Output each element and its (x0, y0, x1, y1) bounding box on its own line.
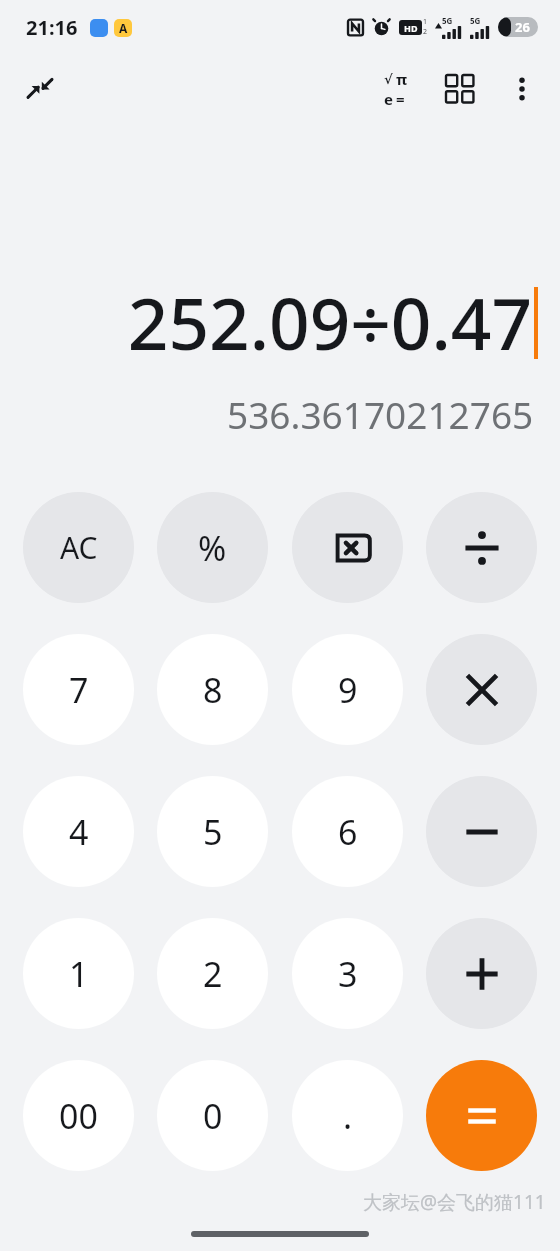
button[interactable]: 6 (292, 776, 403, 887)
button[interactable]: 7 (23, 634, 134, 745)
staticText: 536.36170212765 (227, 389, 534, 439)
staticText: HD (404, 22, 418, 34)
staticText: 大家坛@会飞的猫111 (363, 1189, 546, 1215)
button[interactable]: 4 (23, 776, 134, 887)
staticText: 5G (470, 15, 481, 26)
staticText: 3 (338, 951, 358, 997)
button[interactable]: % (157, 492, 268, 603)
button[interactable]: 1 (23, 918, 134, 1029)
staticText: % (198, 525, 227, 571)
button[interactable]: Scientific mode (370, 63, 422, 115)
button[interactable]: Collapse (14, 63, 66, 115)
staticText: 0 (203, 1093, 223, 1139)
staticText: e (384, 89, 393, 109)
staticText: 2 (203, 951, 223, 997)
staticText: . (343, 1093, 353, 1139)
staticText: 5G (442, 15, 453, 26)
staticText: 1 (423, 17, 428, 27)
button[interactable]: 9 (292, 634, 403, 745)
staticText: 6 (338, 809, 358, 855)
button[interactable]: More options (496, 63, 548, 115)
button[interactable]: Unit converter (434, 63, 486, 115)
button[interactable]: . (292, 1060, 403, 1171)
staticText: 4 (69, 809, 89, 855)
button[interactable]: Add (426, 918, 537, 1029)
staticText: 5 (203, 809, 223, 855)
staticText: 21:16 (26, 14, 78, 41)
staticText: AC (60, 527, 98, 568)
button[interactable]: 0 (157, 1060, 268, 1171)
staticText: 2 (423, 27, 428, 37)
staticText: 252.09÷0.47 (127, 274, 532, 371)
staticText: = (396, 89, 405, 109)
staticText: 8 (203, 667, 223, 713)
button[interactable]: Multiply (426, 634, 537, 745)
staticText: 7 (69, 667, 89, 713)
button[interactable]: 8 (157, 634, 268, 745)
staticText: A (119, 20, 128, 36)
button[interactable]: 2 (157, 918, 268, 1029)
button[interactable]: 00 (23, 1060, 134, 1171)
button[interactable]: 3 (292, 918, 403, 1029)
button[interactable]: AC (23, 492, 134, 603)
staticText: 26 (515, 18, 530, 36)
button[interactable]: Divide (426, 492, 537, 603)
staticText: 1 (69, 951, 89, 997)
staticText: π (396, 69, 408, 89)
button[interactable]: Equals (426, 1060, 537, 1171)
button[interactable]: Subtract (426, 776, 537, 887)
staticText: 9 (338, 667, 358, 713)
button[interactable]: Backspace (292, 492, 403, 603)
button[interactable]: 5 (157, 776, 268, 887)
staticText: 00 (59, 1093, 98, 1139)
staticText: √ (384, 72, 393, 87)
